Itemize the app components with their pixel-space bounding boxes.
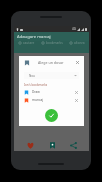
button[interactable]: Confirm: [45, 109, 58, 122]
staticText: Nou: [29, 74, 35, 78]
staticText: muncaj: [32, 98, 44, 102]
button[interactable]: Close: [74, 59, 81, 66]
staticText: Adaugare marcaj: [17, 34, 51, 40]
staticText: Draw: [32, 90, 40, 94]
staticText: Ion's bookmarks: [24, 83, 48, 87]
staticText: Alege un dosar: [38, 60, 64, 65]
button[interactable]: muncaj: [24, 96, 78, 104]
button[interactable]: Nou: [24, 72, 79, 79]
button[interactable]: Favorite: [24, 139, 36, 151]
button[interactable]: Draw: [24, 88, 78, 96]
staticText: cautare: [23, 41, 35, 45]
button[interactable]: altceva: [64, 41, 89, 45]
button[interactable]: Bookmarks: [46, 139, 58, 151]
staticText: bookmarks: [46, 41, 63, 45]
button[interactable]: bookmarks: [39, 41, 64, 45]
staticText: 4G: [72, 27, 76, 31]
staticText: altceva: [74, 41, 85, 45]
button[interactable]: cautare: [14, 41, 39, 45]
button[interactable]: Share: [67, 139, 79, 151]
